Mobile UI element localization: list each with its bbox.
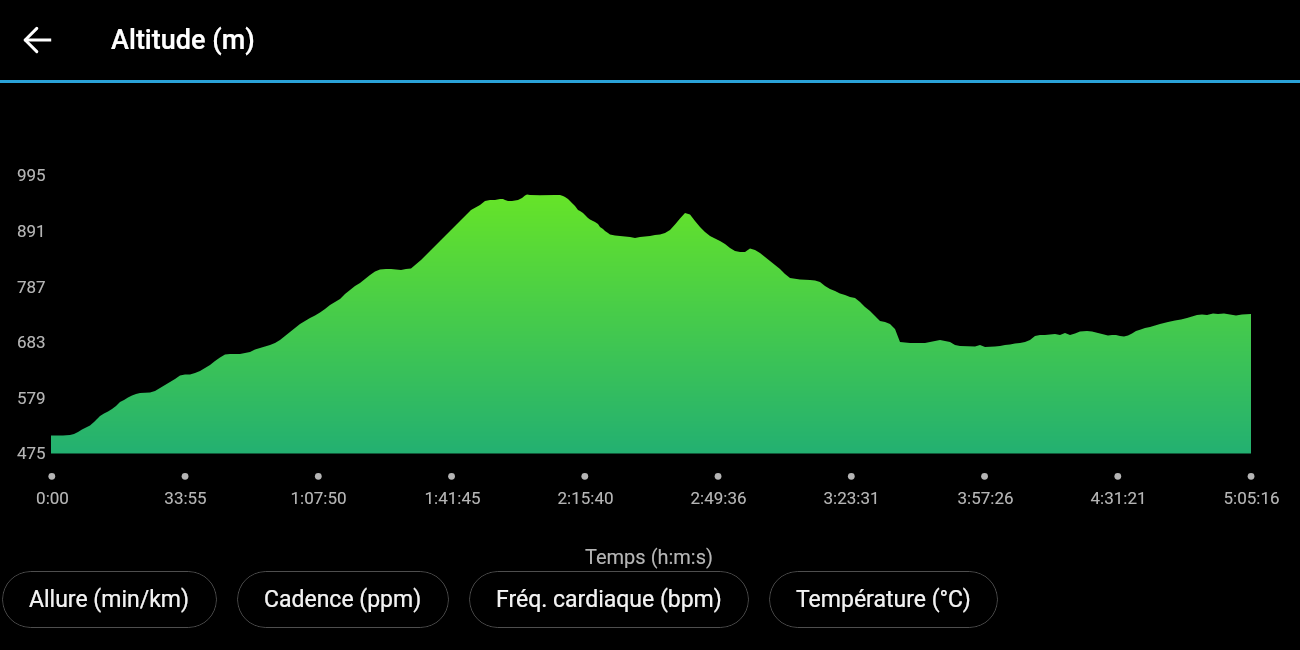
staticText: Fréq. cardiaque (bpm) [496, 586, 722, 613]
staticText: 475 [17, 443, 46, 463]
button[interactable]: Back [12, 14, 64, 66]
staticText: 2:15:40 [557, 488, 614, 508]
staticText: Cadence (ppm) [264, 586, 422, 613]
staticText: 33:55 [164, 488, 207, 508]
button[interactable]: Fréq. cardiaque (bpm) [469, 571, 749, 628]
staticText: Temps (h:m:s) [585, 545, 713, 568]
staticText: 891 [17, 221, 46, 241]
staticText: 1:41:45 [424, 488, 481, 508]
button[interactable]: Cadence (ppm) [237, 571, 449, 628]
staticText: 683 [17, 332, 46, 352]
staticText: 2:49:36 [690, 488, 747, 508]
staticText: 3:23:31 [823, 488, 880, 508]
staticText: 787 [17, 277, 46, 297]
button[interactable]: Température (°C) [769, 571, 998, 628]
staticText: 1:07:50 [290, 488, 347, 508]
staticText: 5:05:16 [1223, 488, 1280, 508]
staticText: Température (°C) [796, 586, 971, 613]
staticText: 579 [17, 388, 46, 408]
staticText: 3:57:26 [957, 488, 1014, 508]
staticText: 4:31:21 [1090, 488, 1147, 508]
staticText: 995 [17, 165, 46, 185]
button[interactable]: Allure (min/km) [2, 571, 217, 628]
staticText: 0:00 [36, 488, 69, 508]
staticText: Allure (min/km) [29, 586, 190, 613]
staticText: Altitude (m) [111, 24, 255, 56]
